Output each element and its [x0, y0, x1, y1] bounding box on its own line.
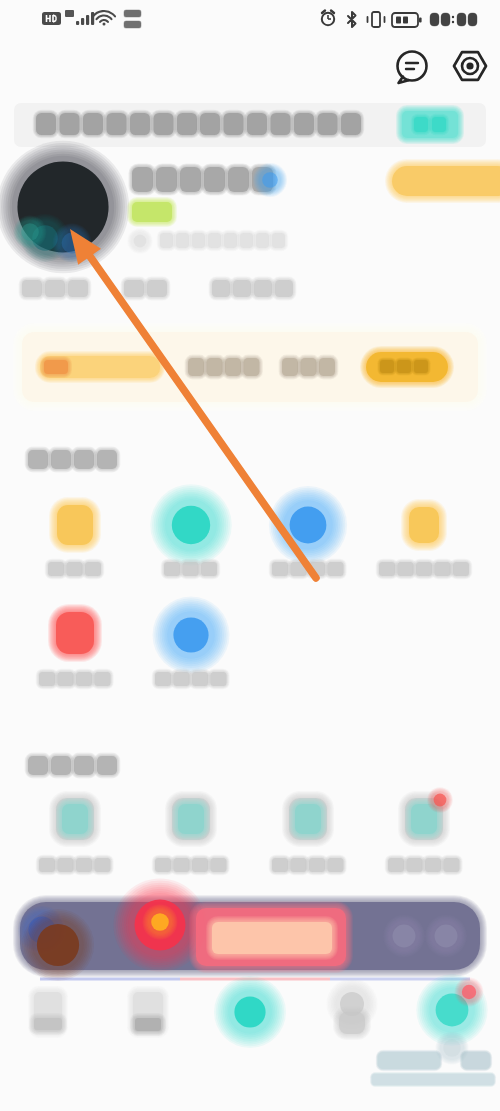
button[interactable]: Profile	[400, 982, 500, 1054]
button[interactable]: More service 1	[24, 792, 128, 884]
button[interactable]: More service 2	[140, 792, 244, 884]
button[interactable]: Notifications	[300, 982, 400, 1054]
button[interactable]: Promotion banner	[20, 902, 480, 970]
button[interactable]: More service 3	[256, 792, 360, 884]
button[interactable]: Home	[0, 982, 100, 1054]
button[interactable]: Service 5	[24, 605, 128, 697]
button[interactable]: Discover	[100, 982, 200, 1054]
button[interactable]: Service 6	[140, 605, 244, 697]
button[interactable]: Avatar	[14, 158, 112, 256]
button[interactable]: Service 1	[24, 495, 128, 587]
button[interactable]: Service 2	[140, 495, 244, 587]
button[interactable]: Settings	[448, 44, 492, 88]
button[interactable]	[22, 332, 478, 402]
button[interactable]: More service 4	[372, 792, 476, 884]
button[interactable]: 绑定	[402, 111, 458, 138]
button[interactable]: Service 4	[372, 495, 476, 587]
button[interactable]: Messages	[390, 44, 434, 88]
button[interactable]: Add	[200, 982, 300, 1054]
button[interactable]: Service 3	[256, 495, 360, 587]
